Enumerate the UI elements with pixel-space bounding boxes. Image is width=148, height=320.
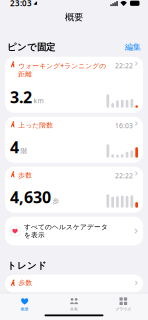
staticText: km bbox=[33, 96, 43, 105]
staticText: トレンド bbox=[7, 260, 47, 271]
button[interactable]: 共有 bbox=[49, 296, 99, 312]
staticText: 階 bbox=[20, 147, 27, 155]
staticText: すべてのヘルスケアデータ を表示 bbox=[24, 223, 108, 239]
button[interactable]: ブラウズ bbox=[99, 296, 148, 312]
staticText: 共有 bbox=[70, 307, 78, 311]
staticText: 概要 bbox=[21, 307, 29, 311]
staticText: 3.2 bbox=[10, 86, 32, 108]
staticText: 歩数 bbox=[18, 279, 32, 287]
button[interactable]: 上った階数 bbox=[5, 117, 143, 163]
staticText: 22:22 bbox=[115, 61, 133, 70]
staticText: 歩 bbox=[52, 197, 59, 205]
staticText: 上った階数 bbox=[18, 121, 53, 129]
staticText: 4 bbox=[10, 136, 19, 158]
staticText: 編集 bbox=[125, 42, 141, 52]
staticText: 概要 bbox=[65, 11, 83, 23]
staticText: 歩数 bbox=[18, 171, 32, 179]
button[interactable]: 歩数 bbox=[5, 275, 143, 293]
button[interactable]: ウォーキング+ランニングの距離 bbox=[5, 57, 143, 113]
button[interactable]: 編集 bbox=[125, 42, 141, 52]
staticText: ブラウズ bbox=[115, 307, 131, 311]
staticText: ウォーキング+ランニングの距離 bbox=[18, 61, 106, 78]
staticText: 23:03 bbox=[10, 0, 32, 8]
button[interactable]: 歩数 bbox=[5, 167, 143, 213]
staticText: 22:22 bbox=[115, 171, 133, 180]
button[interactable]: すべてのヘルスケアデータ を表示 bbox=[5, 217, 143, 245]
staticText: 4,630 bbox=[10, 186, 51, 208]
staticText: ピンで固定 bbox=[7, 41, 55, 53]
staticText: 16:03 bbox=[115, 121, 133, 130]
button[interactable]: 概要 bbox=[0, 296, 49, 312]
